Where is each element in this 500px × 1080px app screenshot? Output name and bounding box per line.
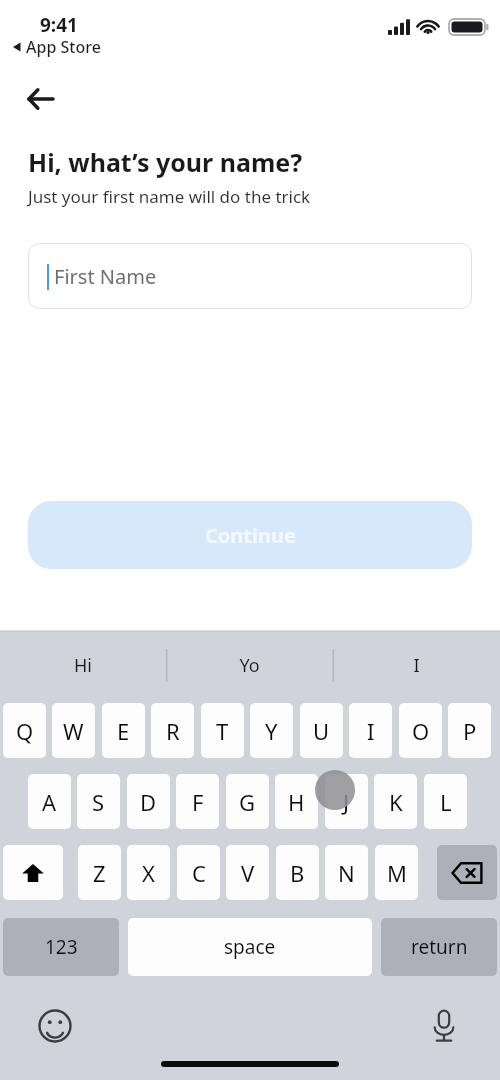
staticText: Y (265, 716, 278, 746)
button[interactable]: X (127, 845, 170, 900)
button[interactable]: N (325, 845, 368, 900)
staticText: Just your first name will do the trick (28, 185, 311, 208)
staticText: return (411, 934, 468, 960)
button[interactable]: Q (3, 703, 46, 758)
button[interactable]: Y (250, 703, 293, 758)
staticText: Z (93, 858, 106, 888)
button[interactable]: K (374, 774, 417, 829)
staticText: Continue (205, 522, 296, 549)
staticText: Hi, what’s your name? (28, 145, 303, 179)
staticText: C (192, 858, 206, 888)
button[interactable]: M (375, 845, 418, 900)
staticText: Yo (239, 653, 260, 678)
button[interactable]: Backspace (437, 845, 497, 900)
staticText: A (42, 787, 57, 817)
staticText: G (239, 787, 256, 817)
button[interactable]: F (176, 774, 219, 829)
button[interactable]: Shift (3, 845, 63, 900)
staticText: K (389, 787, 403, 817)
staticText: V (241, 858, 255, 888)
staticText: Hi (74, 653, 92, 678)
button[interactable]: return (381, 918, 497, 976)
staticText: First Name (54, 263, 157, 290)
staticText: 123 (45, 934, 78, 960)
staticText: N (338, 858, 355, 888)
staticText: I (367, 716, 375, 746)
button[interactable]: 123 (3, 918, 119, 976)
staticText: T (216, 716, 229, 746)
staticText: space (224, 934, 276, 960)
button[interactable]: I (333, 631, 500, 700)
button[interactable]: D (127, 774, 170, 829)
staticText: W (63, 716, 84, 746)
staticText: P (463, 716, 477, 746)
button[interactable]: Hi (0, 631, 166, 700)
button[interactable]: Z (78, 845, 121, 900)
button[interactable]: Back (18, 76, 64, 122)
staticText: B (290, 858, 305, 888)
button[interactable]: G (226, 774, 269, 829)
staticText: U (313, 716, 330, 746)
staticText: H (288, 787, 305, 817)
button[interactable]: P (448, 703, 491, 758)
button[interactable]: Yo (166, 631, 333, 700)
staticText: F (192, 787, 204, 817)
button[interactable]: R (151, 703, 194, 758)
staticText: L (440, 787, 452, 817)
button[interactable]: H (275, 774, 318, 829)
button[interactable]: I (349, 703, 392, 758)
staticText: M (387, 858, 407, 888)
button[interactable]: J (325, 774, 368, 829)
button[interactable]: U (300, 703, 343, 758)
staticText: O (412, 716, 430, 746)
button[interactable]: First Name (28, 243, 472, 309)
button[interactable]: C (177, 845, 220, 900)
button[interactable]: Emoji (32, 1003, 78, 1049)
button[interactable]: W (52, 703, 95, 758)
staticText: X (142, 858, 155, 888)
button[interactable]: space (128, 918, 372, 976)
button[interactable]: L (424, 774, 467, 829)
button[interactable]: S (77, 774, 120, 829)
button[interactable]: V (226, 845, 269, 900)
button[interactable]: Dictate (421, 1003, 467, 1049)
staticText: 9:41 (40, 12, 78, 38)
staticText: I (413, 653, 420, 678)
staticText: D (140, 787, 157, 817)
staticText: E (117, 716, 130, 746)
button[interactable]: E (102, 703, 145, 758)
button[interactable]: Continue (28, 501, 472, 569)
staticText: App Store (26, 36, 101, 58)
button[interactable]: O (399, 703, 442, 758)
staticText: S (92, 787, 105, 817)
button[interactable]: A (28, 774, 71, 829)
staticText: Q (16, 716, 34, 746)
staticText: R (166, 716, 180, 746)
staticText: J (343, 787, 350, 817)
button[interactable]: T (201, 703, 244, 758)
button[interactable]: B (276, 845, 319, 900)
